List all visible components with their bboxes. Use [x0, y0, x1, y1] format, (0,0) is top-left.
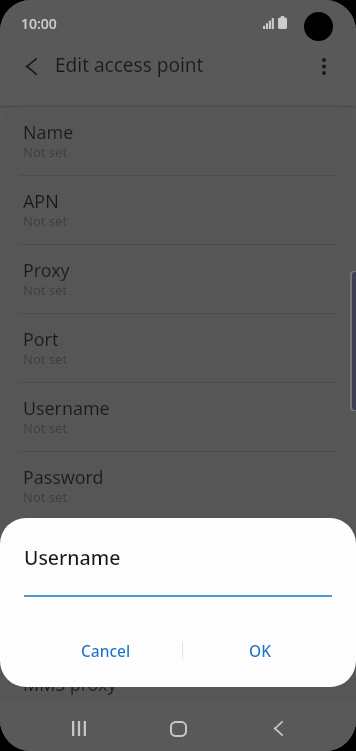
button[interactable]: Home — [154, 707, 202, 750]
button[interactable]: Navigate up — [7, 42, 55, 90]
button[interactable]: Cancel — [29, 626, 182, 674]
button[interactable]: Port — [0, 314, 356, 382]
staticText: Username — [24, 544, 121, 571]
staticText: Not set — [23, 419, 68, 437]
staticText: APN — [23, 189, 59, 213]
staticText: Not set — [23, 143, 68, 161]
staticText: 10:00 — [21, 14, 57, 33]
button[interactable]: Username — [0, 383, 356, 451]
button[interactable]: MMS port — [0, 728, 356, 751]
staticText: Username — [23, 396, 110, 420]
button[interactable]: Server — [0, 521, 356, 589]
staticText: Name — [23, 120, 74, 144]
staticText: Password — [23, 465, 104, 489]
staticText: Not set — [23, 488, 68, 506]
button[interactable]: Recents — [55, 707, 103, 750]
button[interactable]: Proxy — [0, 245, 356, 313]
staticText: Not set — [23, 350, 68, 368]
button[interactable]: MMS proxy — [0, 659, 356, 727]
staticText: Cancel — [81, 640, 131, 661]
button[interactable]: Name — [0, 107, 356, 175]
staticText: Not set — [23, 281, 68, 299]
button[interactable]: MMSC — [0, 590, 356, 658]
button[interactable]: Back — [254, 707, 302, 750]
staticText: MMS proxy — [23, 672, 117, 696]
button[interactable]: OK — [183, 626, 337, 674]
button[interactable]: More options — [300, 42, 348, 90]
button[interactable]: Password — [0, 452, 356, 520]
staticText: Edit access point — [55, 52, 204, 78]
button[interactable]: APN — [0, 176, 356, 244]
staticText: Proxy — [23, 258, 70, 282]
staticText: Port — [23, 327, 59, 351]
staticText: Not set — [23, 212, 68, 230]
staticText: Server — [23, 534, 77, 558]
staticText: OK — [249, 640, 271, 661]
staticText: Not set — [23, 557, 68, 575]
